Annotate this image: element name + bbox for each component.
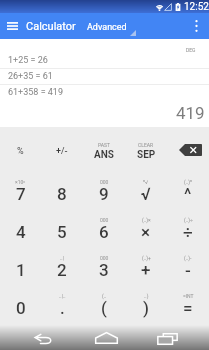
button[interactable]: ×10ˣ	[0, 173, 41, 211]
staticText: 9	[99, 184, 109, 204]
staticText: √	[141, 184, 151, 204]
button[interactable]: (..)ⁿ	[167, 173, 209, 211]
staticText: +/-	[56, 146, 68, 157]
button[interactable]: ..)	[125, 287, 167, 325]
button[interactable]: ..|	[41, 249, 83, 287]
button[interactable]: (..)-	[167, 249, 209, 287]
button[interactable]: 000	[83, 211, 125, 249]
staticText: ×10ˣ	[15, 179, 26, 186]
staticText: %	[17, 146, 24, 157]
staticText: 3	[99, 260, 109, 280]
staticText: (..)ⁿ	[184, 179, 193, 185]
button[interactable]: (..)+	[125, 249, 167, 287]
staticText: 000	[100, 255, 109, 261]
staticText: 1	[16, 260, 26, 280]
staticText: CLEAR	[138, 142, 154, 148]
staticText: )	[143, 298, 149, 318]
button[interactable]: CLEAR	[125, 127, 167, 156]
staticText: 1+25 = 26	[8, 55, 48, 66]
staticText: 419	[176, 103, 205, 123]
button[interactable]: 0	[0, 287, 41, 325]
staticText: ^	[184, 184, 192, 204]
staticText: (..)÷	[184, 217, 193, 223]
staticText: Advanced	[87, 22, 127, 33]
staticText: (	[101, 298, 107, 318]
button[interactable]: %	[0, 127, 41, 156]
staticText: ..|	[60, 255, 64, 261]
button[interactable]: Backspace	[167, 127, 209, 156]
staticText: ..|..	[59, 293, 66, 299]
staticText: SEP	[137, 149, 156, 161]
staticText: DEG	[186, 47, 196, 53]
button[interactable]: 5	[41, 211, 83, 249]
staticText: ×	[141, 222, 151, 242]
button[interactable]: 1	[0, 249, 41, 287]
button[interactable]: Home	[88, 325, 124, 350]
staticText: PAST	[98, 142, 111, 148]
staticText: 5	[57, 222, 67, 242]
staticText: +	[141, 260, 151, 280]
button[interactable]: =INT	[167, 287, 209, 325]
staticText: (..)×	[142, 217, 151, 223]
button[interactable]: More options	[183, 13, 209, 39]
staticText: 000	[100, 179, 109, 185]
staticText: =	[183, 298, 193, 318]
staticText: Calculator	[26, 20, 76, 33]
button[interactable]: 8	[41, 173, 83, 211]
button[interactable]: (..	[83, 287, 125, 325]
button[interactable]: Recent apps	[150, 325, 184, 350]
staticText: 7	[16, 184, 26, 204]
staticText: ⁿ√	[143, 179, 149, 185]
staticText: =INT	[183, 293, 194, 299]
staticText: 8	[57, 184, 67, 204]
button[interactable]: 000	[83, 249, 125, 287]
staticText: (..	[102, 293, 107, 299]
staticText: -	[185, 260, 191, 280]
staticText: ..)	[144, 293, 149, 299]
staticText: 0	[16, 298, 26, 318]
staticText: 6	[99, 222, 109, 242]
button[interactable]: ⁿ√	[125, 173, 167, 211]
button[interactable]: Advanced	[84, 13, 138, 39]
button[interactable]: (..)÷	[167, 211, 209, 249]
staticText: 26+35 = 61	[8, 71, 53, 82]
button[interactable]: Back	[26, 325, 60, 350]
staticText: ÷	[183, 222, 193, 242]
staticText: 4	[16, 222, 26, 242]
staticText: 12:52	[184, 1, 209, 13]
button[interactable]: 000	[83, 173, 125, 211]
staticText: (..)-	[184, 255, 192, 261]
button[interactable]: (..)×	[125, 211, 167, 249]
staticText: (..)+	[142, 255, 151, 261]
staticText: 61+358 = 419	[8, 87, 63, 98]
staticText: ANS	[94, 149, 114, 161]
staticText: .	[60, 298, 65, 318]
staticText: 000	[100, 217, 109, 223]
button[interactable]: Navigation drawer	[0, 13, 26, 39]
staticText: 2	[57, 260, 67, 280]
button[interactable]: +/-	[41, 127, 83, 156]
button[interactable]: 4	[0, 211, 41, 249]
button[interactable]: PAST	[83, 127, 125, 156]
button[interactable]: ..|..	[41, 287, 83, 325]
